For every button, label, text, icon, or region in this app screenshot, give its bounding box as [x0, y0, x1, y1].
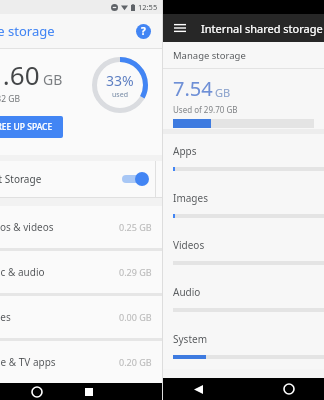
button[interactable]: Audio [163, 275, 324, 322]
button[interactable]: Games [0, 296, 162, 338]
staticText: Photos & videos [0, 220, 54, 234]
button[interactable]: Smart Storage [0, 161, 162, 197]
staticText: 0.20 GB [119, 356, 152, 368]
button[interactable]: Manage storage [163, 42, 324, 68]
staticText: Smart Storage [0, 172, 42, 186]
button[interactable]: Music & audio [0, 251, 162, 293]
button[interactable]: Smart Storage toggle [120, 169, 150, 189]
button[interactable]: Help [134, 22, 152, 40]
staticText: 7.54 [173, 75, 213, 102]
staticText: FREE UP SPACE [0, 121, 53, 133]
button[interactable]: Videos [163, 228, 324, 275]
staticText: 33% [106, 71, 134, 90]
button[interactable]: Back [189, 380, 207, 398]
staticText: Movie & TV apps [0, 355, 56, 369]
staticText: of 32 GB [0, 93, 20, 105]
staticText: Music & audio [0, 265, 45, 279]
staticText: 0.25 GB [119, 221, 152, 233]
button[interactable]: Movie & TV apps [0, 341, 162, 383]
staticText: ? [141, 24, 146, 38]
staticText: Used of 29.70 GB [173, 104, 238, 115]
staticText: Images [173, 191, 208, 205]
staticText: Videos [173, 238, 205, 252]
staticText: GB [43, 70, 63, 89]
staticText: 0.00 GB [119, 311, 152, 323]
staticText: Audio [173, 285, 201, 299]
button[interactable]: Home [280, 380, 298, 398]
staticText: Manage storage [173, 49, 246, 62]
button[interactable]: Home [28, 383, 46, 400]
staticText: System [173, 332, 207, 346]
button[interactable]: FREE UP SPACE [0, 116, 63, 138]
staticText: 1.60 [0, 57, 40, 92]
button[interactable]: System [163, 322, 324, 369]
staticText: Apps [173, 144, 197, 158]
button[interactable]: Recents [80, 383, 98, 400]
staticText: ee storage [0, 22, 55, 40]
button[interactable]: Photos & videos [0, 206, 162, 248]
button[interactable]: Menu [171, 19, 189, 37]
staticText: 0.29 GB [119, 266, 152, 278]
button[interactable]: Images [163, 181, 324, 228]
staticText: Internal shared storage [201, 21, 323, 36]
staticText: GB [215, 85, 231, 100]
button[interactable]: Apps [163, 134, 324, 181]
staticText: Games [0, 310, 11, 324]
staticText: used [112, 90, 128, 100]
staticText: 12:55 [138, 2, 158, 12]
